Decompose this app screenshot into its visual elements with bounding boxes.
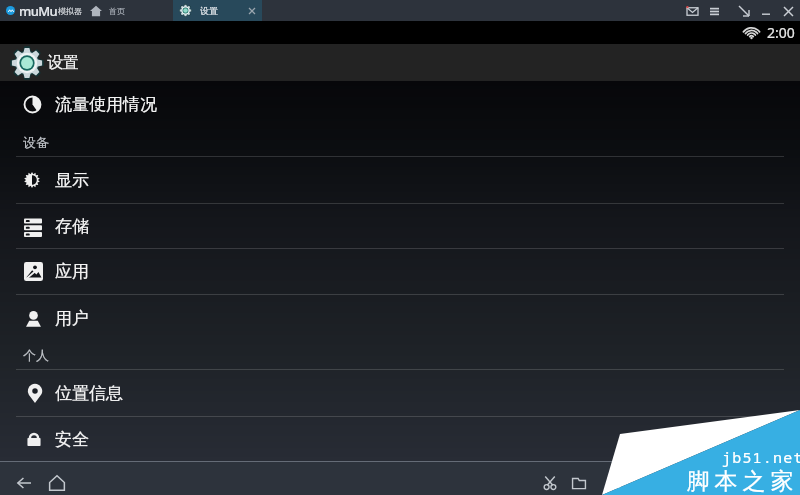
button[interactable]: 位置信息: [0, 370, 800, 416]
staticText: muMu: [19, 2, 58, 20]
staticText: 2:00: [767, 23, 795, 42]
button[interactable]: Minimize to tray: [734, 1, 754, 21]
staticText: 安全: [55, 429, 89, 450]
button[interactable]: 存储: [0, 204, 800, 248]
staticText: 设置: [200, 5, 218, 16]
button[interactable]: Close: [778, 1, 798, 21]
button[interactable]: 用户: [0, 295, 800, 341]
staticText: 显示: [55, 170, 89, 191]
button[interactable]: Back: [11, 470, 37, 495]
button[interactable]: Close tab: [245, 4, 259, 18]
button[interactable]: 安全: [0, 417, 800, 461]
button[interactable]: 流量使用情况: [0, 81, 800, 128]
staticText: 模拟器: [58, 6, 82, 16]
button[interactable]: Screenshot: [537, 470, 563, 495]
button[interactable]: Messages: [682, 1, 702, 21]
button[interactable]: 应用: [0, 249, 800, 294]
button[interactable]: Minimize: [756, 1, 776, 21]
button[interactable]: 显示: [0, 157, 800, 203]
staticText: 位置信息: [55, 383, 123, 404]
staticText: 首页: [109, 6, 125, 16]
button[interactable]: 设置: [173, 0, 262, 21]
staticText: 个人: [23, 347, 49, 363]
staticText: 设备: [23, 134, 49, 150]
button[interactable]: Recent apps: [602, 470, 628, 495]
staticText: 脚本之家: [684, 467, 796, 495]
button[interactable]: Menu: [704, 1, 724, 21]
staticText: jb51.net: [722, 447, 800, 467]
staticText: 用户: [55, 308, 89, 329]
button[interactable]: Home: [44, 470, 70, 495]
staticText: 设置: [47, 53, 79, 73]
staticText: 应用: [55, 261, 89, 282]
button[interactable]: Files: [566, 470, 592, 495]
staticText: 流量使用情况: [55, 94, 157, 115]
button[interactable]: 首页: [88, 0, 127, 21]
staticText: 存储: [55, 216, 89, 237]
